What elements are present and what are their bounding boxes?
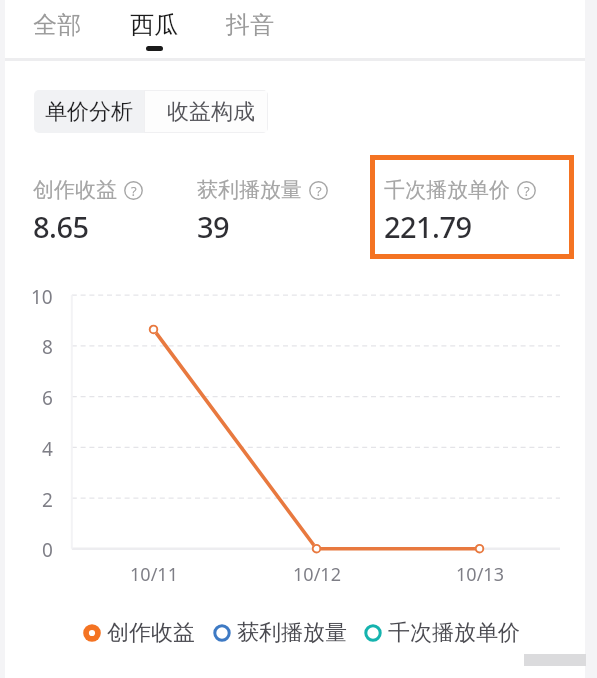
staticText: 2 — [42, 487, 53, 513]
button[interactable]: 获利播放量 — [197, 177, 328, 246]
staticText: 8 — [42, 334, 53, 360]
staticText: 10/12 — [293, 562, 341, 587]
staticText: 39 — [197, 207, 230, 246]
staticText: 获利播放量 — [197, 177, 302, 203]
staticText: 4 — [42, 436, 53, 462]
staticText: 8.65 — [33, 207, 89, 246]
button[interactable]: 关于千次播放单价 的说明 — [517, 181, 536, 200]
staticText: 6 — [42, 385, 53, 411]
staticText: 10/11 — [130, 562, 178, 587]
staticText: 收益构成 — [167, 98, 255, 126]
staticText: 创作收益 — [33, 177, 117, 203]
button[interactable]: 西瓜 — [114, 0, 194, 57]
staticText: 10/13 — [456, 562, 504, 587]
button[interactable]: 单价分析 — [34, 90, 144, 133]
button[interactable]: 获利播放量 — [213, 619, 347, 647]
staticText: 单价分析 — [45, 98, 133, 126]
staticText: ? — [316, 182, 322, 200]
button[interactable]: 创作收益 — [83, 619, 195, 647]
staticText: 0 — [42, 537, 53, 563]
button[interactable]: 全部 — [17, 0, 97, 57]
staticText: 全部 — [33, 10, 81, 40]
staticText: 抖音 — [226, 10, 274, 40]
staticText: 获利播放量 — [237, 619, 347, 647]
button[interactable]: 抖音 — [210, 0, 290, 57]
staticText: 千次播放单价 — [388, 619, 520, 647]
staticText: 创作收益 — [107, 619, 195, 647]
staticText: 千次播放单价 — [384, 177, 510, 203]
button[interactable]: 关于创作收益 的说明 — [124, 181, 143, 200]
staticText: 221.79 — [384, 207, 472, 246]
button[interactable]: 关于获利播放量 的说明 — [309, 181, 328, 200]
button[interactable]: 收益构成 — [144, 90, 268, 133]
staticText: 10 — [31, 284, 53, 310]
staticText: ? — [524, 182, 530, 200]
staticText: ? — [131, 182, 137, 200]
staticText: 西瓜 — [130, 10, 178, 40]
button[interactable]: 创作收益 — [33, 177, 143, 246]
button[interactable]: 千次播放单价 — [384, 177, 536, 246]
button[interactable]: 千次播放单价 — [364, 619, 520, 647]
